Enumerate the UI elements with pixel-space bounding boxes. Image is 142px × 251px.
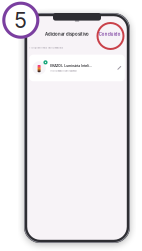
staticText: 1 dispositivo(s) adicionado(s) [29,46,63,49]
staticText: 5 [14,7,27,33]
button[interactable]: Concluído [97,30,123,39]
staticText: EKAZOL Luminária Inteli… [50,64,92,68]
staticText: Concluído [99,32,121,37]
button[interactable]: EKAZOL Luminária Inteli… [27,55,127,81]
staticText: Adicionar dispositivo [45,32,89,37]
staticText: Adicionado com sucesso [50,69,76,72]
